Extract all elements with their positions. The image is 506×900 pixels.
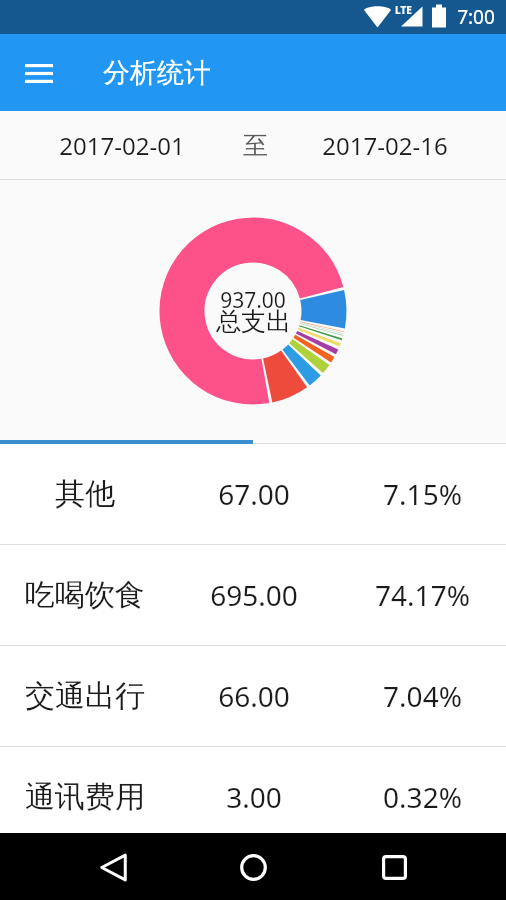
staticText: 74.17%	[375, 576, 470, 614]
button[interactable]: Recent apps	[368, 841, 420, 893]
staticText: 分析统计	[103, 56, 211, 90]
staticText: 交通出行	[25, 677, 145, 715]
button[interactable]: Open navigation drawer	[11, 45, 67, 101]
staticText: 67.00	[218, 475, 290, 513]
staticText: 其他	[55, 475, 115, 513]
button[interactable]: 其他	[0, 444, 506, 544]
staticText: 至	[243, 130, 263, 161]
button[interactable]: Home	[227, 841, 279, 893]
staticText: 66.00	[218, 677, 290, 715]
staticText: 吃喝饮食	[25, 576, 145, 614]
button[interactable]: 吃喝饮食	[0, 545, 506, 645]
button[interactable]: 2017-02-01	[0, 111, 243, 179]
staticText: 0.32%	[383, 778, 462, 816]
staticText: 7.15%	[383, 475, 462, 513]
staticText: 3.00	[226, 778, 282, 816]
button[interactable]: Back	[87, 841, 139, 893]
staticText: 2017-02-16	[322, 129, 448, 162]
staticText: 总支出	[216, 306, 291, 337]
button[interactable]: 通讯费用	[0, 747, 506, 847]
button[interactable]: 交通出行	[0, 646, 506, 746]
staticText: 7:00	[457, 4, 495, 30]
staticText: 2017-02-01	[59, 129, 185, 162]
staticText: 7.04%	[383, 677, 462, 715]
staticText: 937.00	[220, 286, 286, 315]
staticText: 通讯费用	[25, 778, 145, 816]
button[interactable]: 2017-02-16	[263, 111, 506, 179]
staticText: LTE	[395, 3, 412, 17]
staticText: 695.00	[210, 576, 298, 614]
